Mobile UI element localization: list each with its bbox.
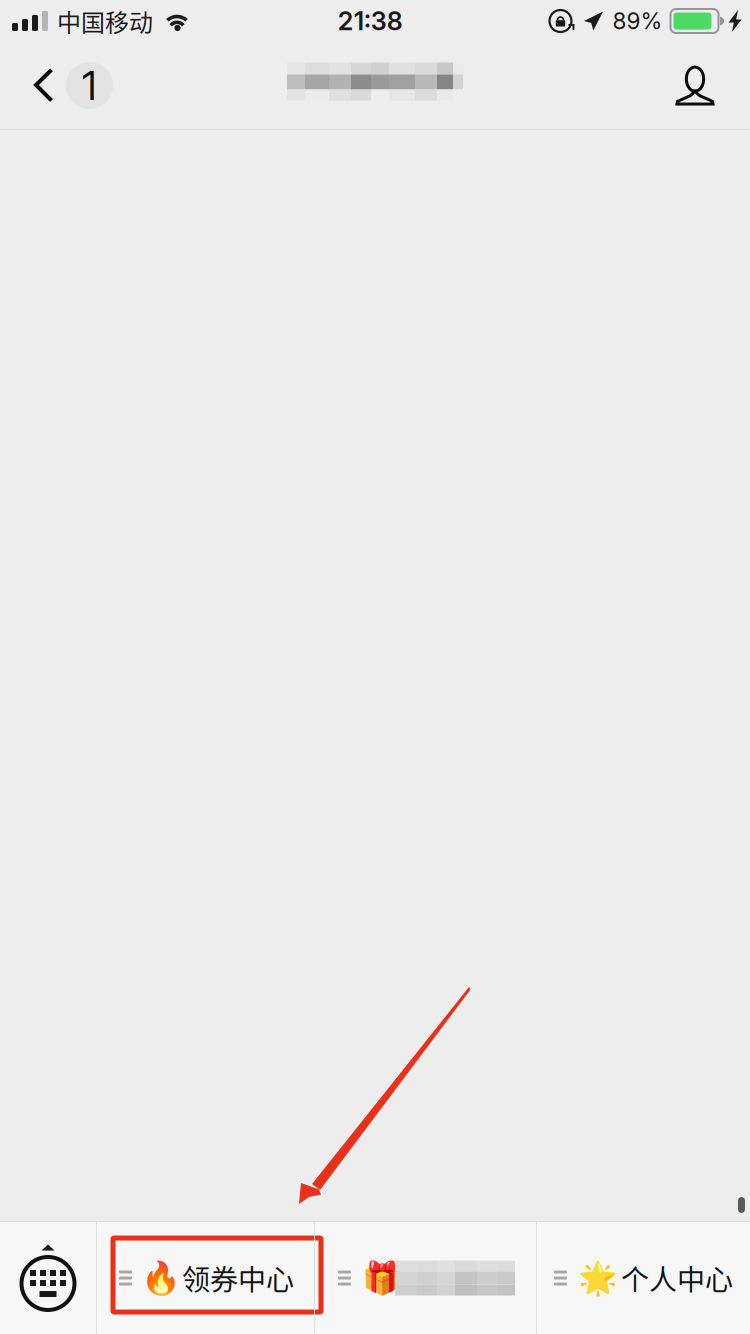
- button[interactable]: Profile: [650, 42, 750, 129]
- button[interactable]: 1: [0, 42, 131, 129]
- button[interactable]: Gift: [315, 1222, 536, 1334]
- staticText: 🎁: [362, 1259, 402, 1297]
- staticText: 个人中心: [621, 1258, 733, 1298]
- staticText: 领券中心: [182, 1258, 294, 1298]
- staticText: 89%: [612, 7, 662, 35]
- staticText: 中国移动: [57, 4, 153, 38]
- button[interactable]: 🌟: [537, 1222, 750, 1334]
- button[interactable]: Keyboard: [0, 1222, 96, 1334]
- staticText: 🔥: [141, 1259, 181, 1297]
- staticText: 🌟: [578, 1259, 618, 1297]
- staticText: 21:38: [338, 6, 403, 36]
- staticText: 1: [82, 61, 97, 110]
- button[interactable]: 🔥: [97, 1222, 314, 1334]
